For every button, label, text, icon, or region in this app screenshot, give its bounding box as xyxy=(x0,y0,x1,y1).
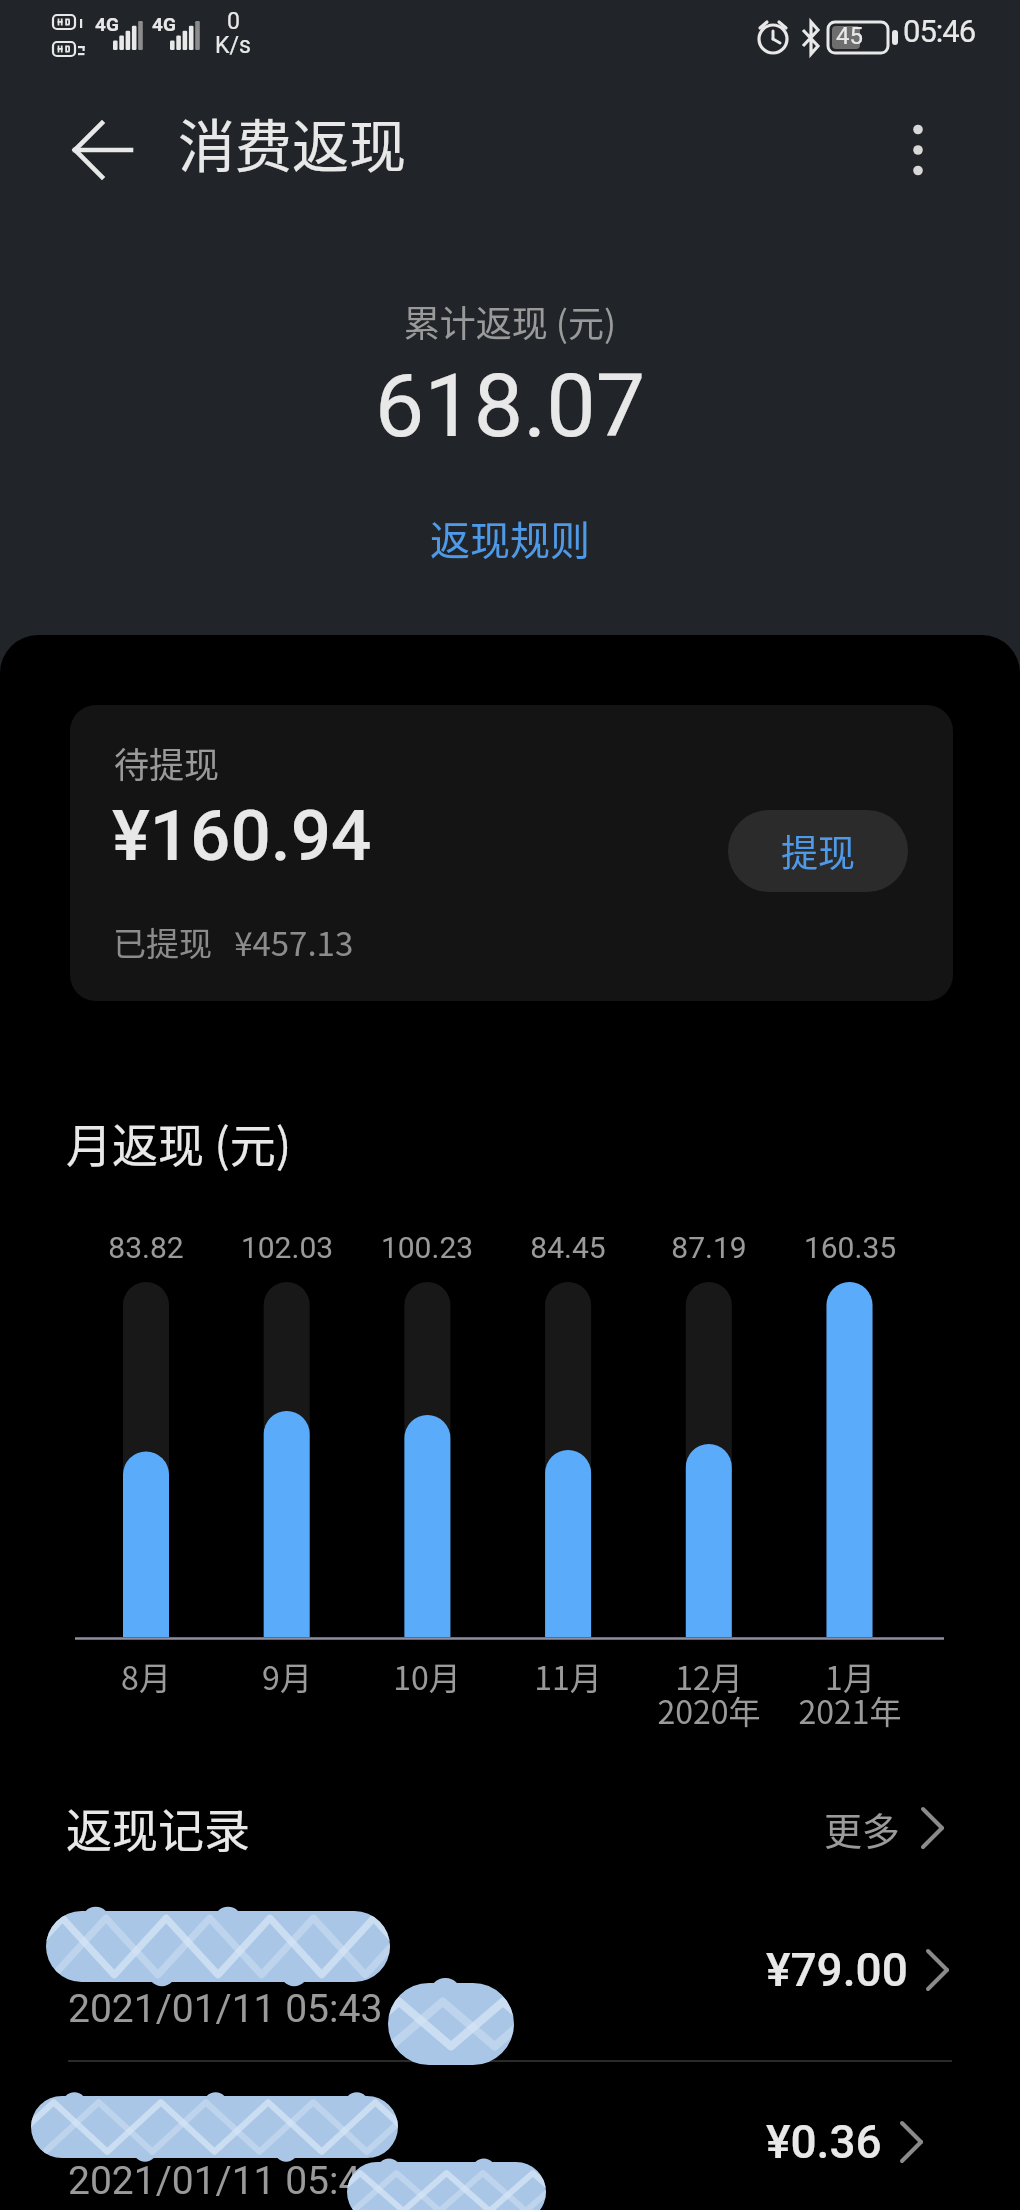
staticText: 8月 xyxy=(66,1653,226,1699)
staticText: 待提现 xyxy=(114,737,220,788)
button[interactable]: 2021/01/11 05:4 xyxy=(0,2062,1020,2210)
staticText: 累计返现 (元) xyxy=(0,295,1020,347)
staticText: 11月 xyxy=(488,1653,648,1699)
staticText: 0 xyxy=(227,8,240,35)
staticText: 12月 xyxy=(629,1653,789,1699)
staticText: 提现 xyxy=(781,824,855,878)
staticText: 10月 xyxy=(347,1653,507,1699)
staticText: 83.82 xyxy=(66,1230,226,1265)
staticText: 84.45 xyxy=(488,1230,648,1265)
staticText: 消费返现 xyxy=(178,101,406,184)
staticText: 已提现 ¥457.13 xyxy=(113,918,354,966)
staticText: 05:46 xyxy=(903,13,976,49)
staticText: 2021年 xyxy=(770,1687,930,1733)
staticText: 618.07 xyxy=(0,354,1020,457)
staticText: 2021/01/11 05:43 xyxy=(68,1986,383,2032)
staticText: 160.35 xyxy=(770,1230,930,1265)
staticText: 4G xyxy=(152,13,176,35)
staticText: 1月 xyxy=(770,1653,930,1699)
staticText: 87.19 xyxy=(629,1230,789,1265)
staticText: 9月 xyxy=(207,1653,367,1699)
staticText: 45 xyxy=(836,22,863,50)
staticText: 更多 xyxy=(824,1801,901,1856)
button[interactable]: More options xyxy=(870,102,966,198)
staticText: 月返现 (元) xyxy=(66,1109,292,1176)
staticText: 100.23 xyxy=(347,1230,507,1265)
button[interactable]: Back xyxy=(56,102,152,198)
button[interactable]: 返现规则 xyxy=(406,499,614,577)
staticText: ¥79.00 xyxy=(766,1943,908,1997)
button[interactable]: 更多 xyxy=(824,1794,957,1862)
staticText: 4G xyxy=(95,13,119,35)
staticText: ¥0.36 xyxy=(766,2115,882,2169)
button[interactable]: 2021/01/11 05:43 xyxy=(0,1890,1020,2060)
staticText: ¥160.94 xyxy=(112,794,372,877)
button[interactable]: 待提现 xyxy=(70,705,953,1001)
staticText: 102.03 xyxy=(207,1230,367,1265)
staticText: 返现规则 xyxy=(430,509,590,567)
button[interactable]: 提现 xyxy=(728,810,908,892)
staticText: 返现记录 xyxy=(66,1794,250,1861)
staticText: 2020年 xyxy=(629,1687,789,1733)
staticText: K/s xyxy=(215,32,251,59)
staticText: 2021/01/11 05:4 xyxy=(68,2158,361,2204)
